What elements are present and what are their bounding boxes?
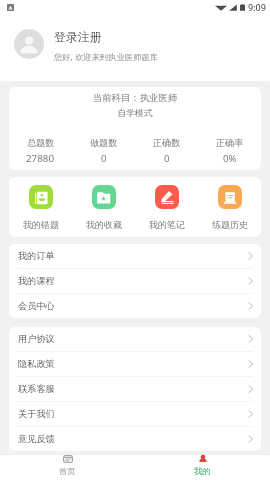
staticText: 我的课程: [18, 275, 55, 287]
staticText: 我的订单: [18, 250, 55, 262]
button[interactable]: 我的: [135, 454, 270, 480]
staticText: 当前科目：执业医师: [9, 92, 261, 104]
staticText: 用户协议: [18, 333, 55, 345]
staticText: 会员中心: [18, 300, 55, 312]
staticText: 正确数: [153, 137, 181, 148]
staticText: 关于我们: [18, 408, 55, 420]
button[interactable]: 我的订单: [9, 244, 261, 268]
button[interactable]: 我的笔记: [135, 177, 198, 237]
staticText: 您好, 欢迎来到执业医师题库: [54, 51, 158, 62]
staticText: 练题历史: [212, 219, 248, 230]
staticText: 我的收藏: [86, 219, 122, 230]
staticText: 做题数: [90, 137, 118, 148]
button[interactable]: 联系客服: [9, 377, 261, 401]
staticText: 我的: [194, 466, 211, 476]
button[interactable]: 练题历史: [198, 177, 261, 237]
staticText: 登录注册: [54, 30, 102, 45]
button[interactable]: 登录注册: [0, 14, 270, 81]
button[interactable]: 用户协议: [9, 327, 261, 351]
staticText: 联系客服: [18, 383, 55, 395]
button[interactable]: 首页: [0, 454, 135, 480]
button[interactable]: 隐私政策: [9, 352, 261, 376]
button[interactable]: 会员中心: [9, 294, 261, 318]
staticText: 自学模式: [9, 108, 261, 119]
staticText: 0%: [223, 152, 237, 165]
button[interactable]: 我的收藏: [72, 177, 135, 237]
staticText: 首页: [59, 466, 76, 476]
staticText: 9:09: [248, 1, 266, 13]
staticText: 正确率: [216, 137, 244, 148]
staticText: 我的笔记: [149, 219, 185, 230]
staticText: 意见反馈: [18, 433, 55, 445]
staticText: 隐私政策: [18, 358, 55, 370]
staticText: 总题数: [27, 137, 55, 148]
button[interactable]: 意见反馈: [9, 427, 261, 451]
button[interactable]: 我的课程: [9, 269, 261, 293]
staticText: 我的错题: [23, 219, 59, 230]
button[interactable]: 我的错题: [9, 177, 72, 237]
staticText: 0: [101, 152, 107, 165]
staticText: 0: [164, 152, 170, 165]
button[interactable]: 关于我们: [9, 402, 261, 426]
staticText: 27880: [26, 152, 55, 165]
